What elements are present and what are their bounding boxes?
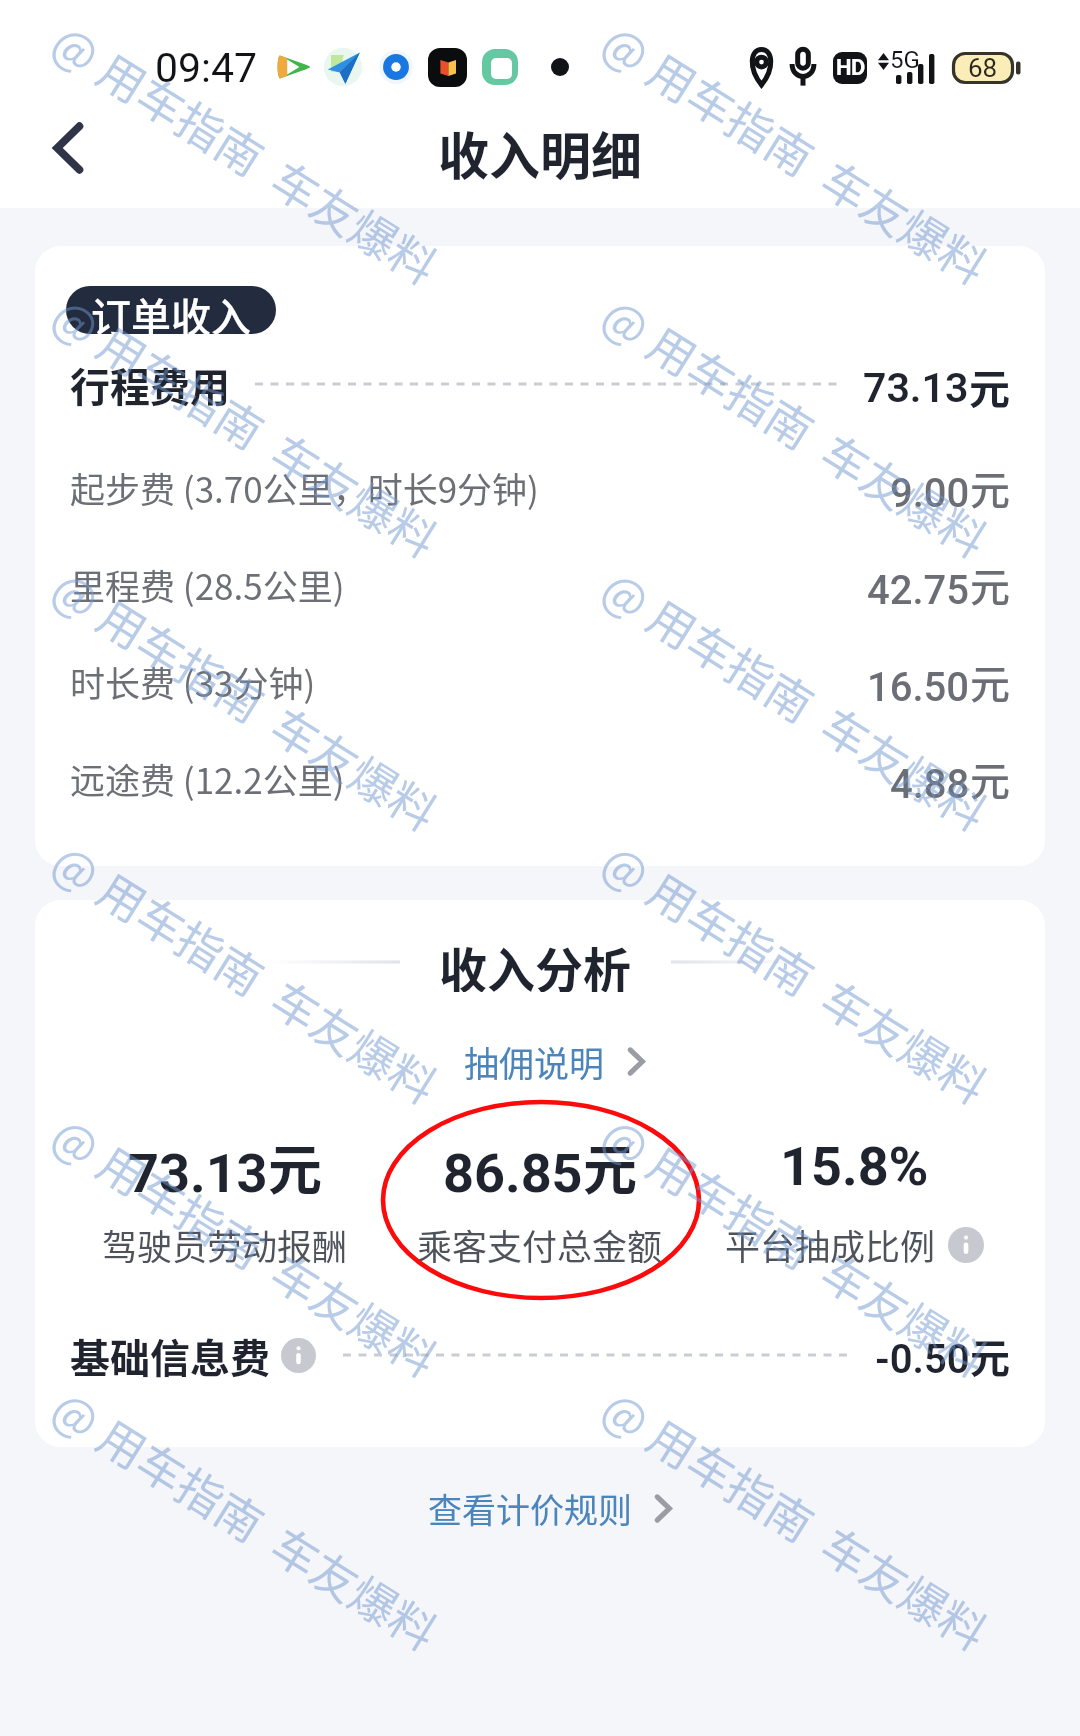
staticText: 09:47 [155,44,258,92]
staticText: 乘客支付总金额 [417,1219,663,1270]
staticText: 驾驶员劳动报酬 [102,1219,348,1270]
staticText: 起步费 (3.70公里，时长9分钟) [70,462,539,513]
staticText: 基础信息费 [70,1327,270,1383]
staticText: 5G [890,46,920,74]
staticText: 元 [970,750,1010,808]
staticText: 元 [970,653,1010,711]
staticText: 远途费 (12.2公里) [70,753,345,804]
staticText: 订单收入 [91,286,251,334]
staticText: 86.85 [443,1142,583,1205]
staticText: 收入分析 [439,932,632,992]
staticText: 元 [970,556,1010,614]
staticText: -0.50 [875,1336,970,1383]
staticText: 42.75 [867,567,970,614]
staticText: 元 [268,1127,322,1205]
staticText: 73.13 [863,364,969,412]
staticText: 元 [970,1327,1010,1383]
staticText: 4.88 [890,761,970,808]
staticText: 时长费 (33分钟) [70,656,316,707]
button[interactable]: 抽佣说明 [49,1036,1045,1086]
button[interactable]: 查看计价规则 [10,1480,1080,1536]
staticText: 68 [968,53,998,83]
staticText: 9.00 [890,470,970,517]
staticText: 元 [969,356,1010,412]
staticText: 查看计价规则 [428,1484,632,1533]
staticText: HD [836,55,865,81]
staticText: 行程费用 [70,356,230,412]
staticText: 元 [583,1127,637,1205]
staticText: 里程费 (28.5公里) [70,559,345,610]
staticText: 收入明细 [438,116,643,190]
staticText: 73.13 [128,1142,268,1205]
staticText: 元 [970,459,1010,517]
staticText: 抽佣说明 [464,1036,605,1086]
staticText: 15.8% [780,1135,929,1198]
staticText: 平台抽成比例 [725,1219,936,1270]
button[interactable]: Back [26,106,110,190]
staticText: 16.50 [867,664,970,711]
